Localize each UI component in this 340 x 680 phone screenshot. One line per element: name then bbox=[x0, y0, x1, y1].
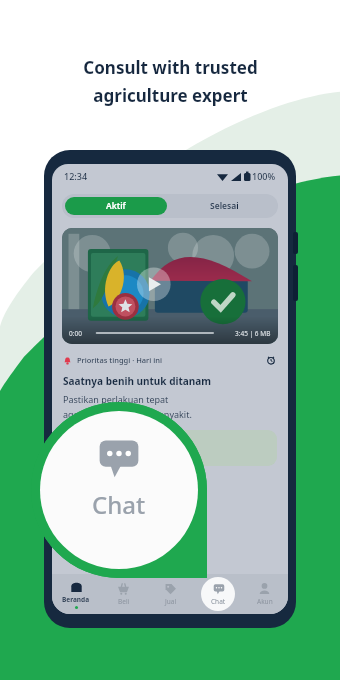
staticText: Beli bbox=[118, 597, 130, 606]
staticText: Aktif bbox=[106, 200, 126, 212]
staticText: Selesai bbox=[210, 200, 239, 212]
staticText: Prioritas tinggi · Hari ini bbox=[77, 355, 162, 365]
button[interactable]: Alarm bbox=[265, 354, 277, 366]
button[interactable]: Chat bbox=[31, 402, 207, 578]
staticText: 3:45 | 6 MB bbox=[235, 329, 271, 338]
staticText: Tandai sudah bbox=[117, 442, 174, 454]
button[interactable]: Beranda bbox=[52, 574, 100, 614]
button[interactable]: Jual bbox=[147, 574, 194, 614]
staticText: Saatnya benih untuk ditanam bbox=[63, 374, 212, 388]
button[interactable]: Akun bbox=[241, 574, 288, 614]
button[interactable]: 0:00 bbox=[62, 228, 278, 344]
staticText: 100% bbox=[252, 170, 276, 182]
staticText: 12:34 bbox=[64, 170, 88, 182]
staticText: Akun bbox=[257, 597, 273, 606]
staticText: Pastikan perlakuan tepat bbox=[63, 393, 169, 405]
button[interactable]: Beli bbox=[100, 574, 147, 614]
staticText: Jual bbox=[165, 597, 177, 606]
staticText: Chat bbox=[92, 488, 146, 521]
staticText: agriculture expert bbox=[93, 84, 248, 107]
staticText: Chat bbox=[211, 597, 226, 606]
staticText: agar terhindar hama penyakit. bbox=[63, 408, 192, 420]
staticText: Consult with trusted bbox=[83, 56, 258, 79]
button[interactable]: Aktif bbox=[65, 197, 167, 215]
staticText: 0:00 bbox=[69, 329, 82, 338]
button[interactable]: Chat bbox=[194, 574, 241, 614]
staticText: Beranda bbox=[62, 595, 90, 604]
button[interactable]: Selesai bbox=[170, 194, 278, 218]
button[interactable]: Tandai sudah bbox=[63, 430, 277, 466]
